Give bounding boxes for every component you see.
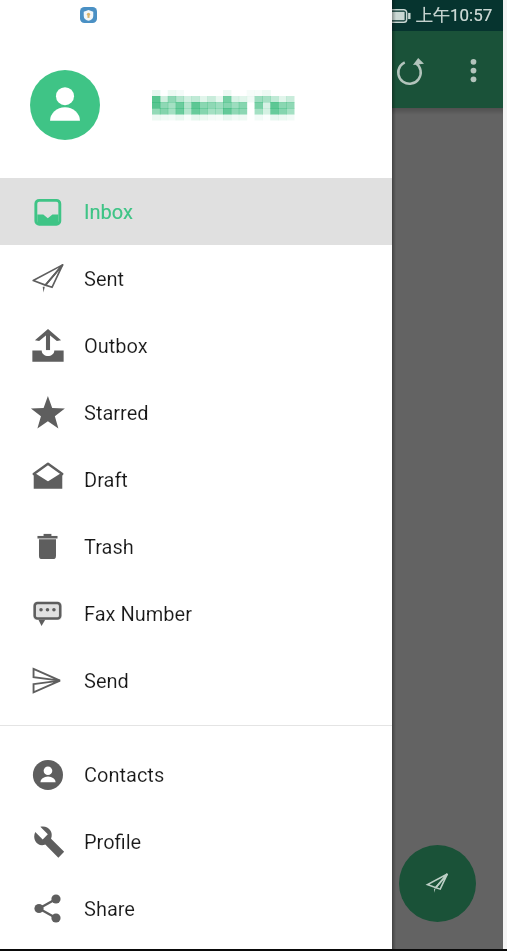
staticText: Share xyxy=(84,897,135,920)
button[interactable]: Contacts xyxy=(0,741,392,808)
button[interactable]: Starred xyxy=(0,379,392,446)
button[interactable]: Share xyxy=(0,875,392,942)
button[interactable]: Profile xyxy=(0,808,392,875)
button[interactable]: Fax Number xyxy=(0,580,392,647)
staticText: Starred xyxy=(84,401,149,424)
button[interactable]: Refresh xyxy=(378,41,440,103)
button[interactable]: Trash xyxy=(0,513,392,580)
staticText: 上午10:57 xyxy=(416,5,493,26)
button[interactable]: More options xyxy=(443,40,503,100)
staticText: Send xyxy=(84,669,129,692)
button[interactable] xyxy=(0,31,392,178)
button[interactable]: Outbox xyxy=(0,312,392,379)
staticText: Contacts xyxy=(84,763,165,786)
button[interactable]: Send xyxy=(0,647,392,714)
staticText: Outbox xyxy=(84,334,148,357)
button[interactable]: Draft xyxy=(0,446,392,513)
staticText: Draft xyxy=(84,468,128,491)
staticText: Profile xyxy=(84,830,142,853)
staticText: Fax Number xyxy=(84,602,192,625)
staticText: Sent xyxy=(84,267,125,290)
button[interactable]: Sent xyxy=(0,245,392,312)
staticText: Trash xyxy=(84,535,134,558)
button[interactable]: Inbox xyxy=(0,178,392,245)
staticText: Inbox xyxy=(84,200,133,223)
button[interactable]: Compose message xyxy=(399,845,476,922)
